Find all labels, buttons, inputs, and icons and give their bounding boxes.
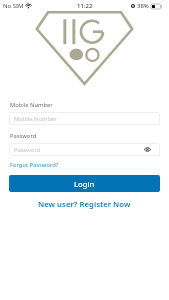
staticText: Forgot Password?: [10, 161, 59, 169]
staticText: 11:22: [77, 2, 93, 10]
staticText: Password: [10, 132, 37, 140]
button[interactable]: Forgot Password?: [10, 161, 59, 169]
staticText: No SIM: [3, 2, 24, 10]
button[interactable]: Show password: [142, 144, 153, 155]
staticText: Mobile Number: [10, 101, 53, 109]
staticText: Login: [74, 179, 95, 189]
button[interactable]: Mobile Number: [9, 112, 160, 125]
staticText: 38%: [137, 2, 149, 10]
staticText: Password: [14, 146, 41, 154]
staticText: Mobile Number: [14, 115, 57, 123]
button[interactable]: Login: [9, 175, 160, 192]
button[interactable]: Password: [9, 143, 160, 156]
staticText: New user? Register Now: [38, 199, 131, 210]
button[interactable]: New user? Register Now: [0, 199, 169, 210]
